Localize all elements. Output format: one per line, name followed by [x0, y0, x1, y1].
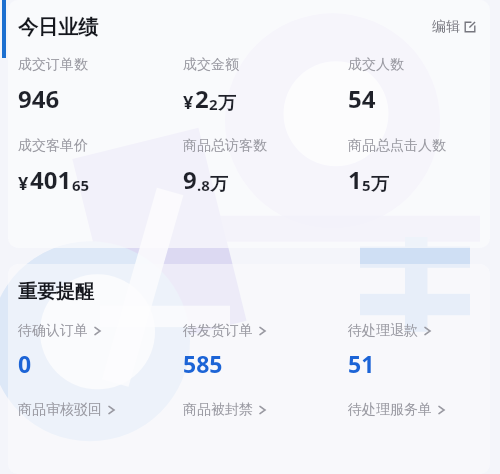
staticText: 万 — [371, 173, 389, 196]
button[interactable]: 商品被封禁 — [183, 401, 348, 419]
staticText: ¥ — [18, 171, 29, 196]
staticText: 401 — [30, 163, 72, 196]
button[interactable]: 待处理服务单 — [348, 401, 480, 419]
staticText: .8 — [197, 175, 210, 195]
button[interactable]: 商品审核驳回 — [18, 401, 183, 419]
staticText: 2 — [195, 82, 209, 115]
staticText: 待发货订单 — [183, 322, 253, 340]
staticText: ¥ — [183, 90, 194, 115]
staticText: 946 — [18, 82, 60, 115]
staticText: 待处理服务单 — [348, 401, 432, 419]
staticText: 商品审核驳回 — [18, 401, 102, 419]
button[interactable]: 待发货订单 — [183, 322, 348, 379]
staticText: 585 — [183, 348, 223, 379]
staticText: 商品总访客数 — [183, 137, 267, 155]
staticText: 成交金额 — [183, 56, 239, 74]
staticText: 1 — [348, 163, 362, 196]
button[interactable]: 待处理退款 — [348, 322, 480, 379]
staticText: 5 — [362, 175, 371, 195]
staticText: 成交客单价 — [18, 137, 88, 155]
staticText: 万 — [218, 92, 236, 115]
staticText: 今日业绩 — [18, 15, 98, 40]
staticText: 万 — [210, 173, 228, 196]
staticText: 商品被封禁 — [183, 401, 253, 419]
staticText: 成交人数 — [348, 56, 404, 74]
staticText: 54 — [348, 82, 376, 115]
staticText: 成交订单数 — [18, 56, 88, 74]
staticText: 商品总点击人数 — [348, 137, 446, 155]
staticText: 待处理退款 — [348, 322, 418, 340]
staticText: 9 — [183, 163, 197, 196]
button[interactable]: 待确认订单 — [18, 322, 183, 379]
button[interactable]: 编辑 — [428, 14, 480, 40]
staticText: 编辑 — [432, 18, 460, 36]
staticText: 重要提醒 — [18, 280, 94, 304]
staticText: 2 — [209, 94, 218, 114]
staticText: 0 — [18, 348, 32, 379]
staticText: 65 — [72, 175, 90, 195]
staticText: 51 — [348, 348, 375, 379]
staticText: 待确认订单 — [18, 322, 88, 340]
